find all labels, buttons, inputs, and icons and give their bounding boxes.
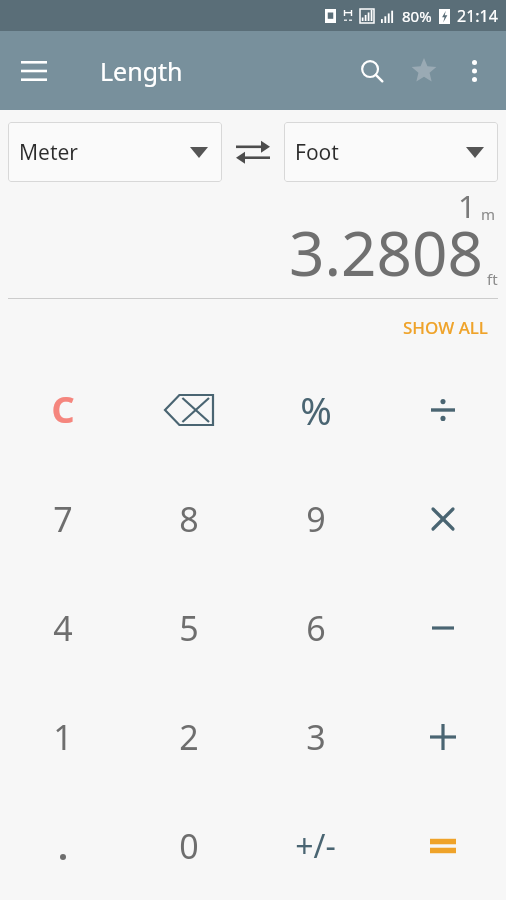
staticText: 8 (179, 496, 199, 542)
button[interactable]: More options (450, 47, 498, 95)
staticText: 0 (179, 823, 199, 869)
staticText: 2 (179, 714, 199, 760)
staticText: Length (100, 54, 183, 88)
button[interactable]: 9 (252, 464, 379, 573)
button[interactable]: 3 (252, 682, 379, 791)
button[interactable]: 6 (252, 573, 379, 682)
button[interactable]: 5 (126, 573, 252, 682)
button[interactable]: SHOW ALL (393, 308, 498, 347)
staticText: 9 (306, 496, 326, 542)
button[interactable]: C (0, 355, 126, 464)
staticText: Foot (295, 138, 339, 167)
button[interactable]: +/- (252, 791, 379, 900)
button[interactable]: Decimal point (0, 791, 126, 900)
button[interactable]: Multiply (379, 464, 506, 573)
staticText: 7 (53, 496, 73, 542)
staticText: 3 (306, 714, 326, 760)
button[interactable]: Minus (379, 573, 506, 682)
staticText: C (51, 385, 75, 434)
staticText: 5 (179, 605, 199, 651)
staticText: 1 (458, 185, 476, 227)
button[interactable]: Backspace (126, 355, 252, 464)
button[interactable]: Equals (379, 791, 506, 900)
staticText: m (481, 204, 496, 224)
button[interactable]: 7 (0, 464, 126, 573)
button[interactable]: 0 (126, 791, 252, 900)
button[interactable]: Open navigation drawer (10, 47, 58, 95)
staticText: 4 (53, 605, 73, 651)
staticText: 1 (53, 714, 73, 760)
button[interactable]: Favorite (398, 45, 450, 97)
staticText: ft (487, 269, 498, 289)
button[interactable]: Swap units (222, 122, 284, 182)
button[interactable]: Foot (284, 122, 498, 182)
staticText: 21:14 (457, 5, 498, 27)
staticText: Meter (19, 138, 78, 167)
staticText: +/- (295, 824, 336, 868)
button[interactable]: Meter (8, 122, 222, 182)
staticText: 6 (306, 605, 326, 651)
staticText: SHOW ALL (403, 316, 488, 339)
button[interactable]: 1 (0, 682, 126, 791)
button[interactable]: 8 (126, 464, 252, 573)
button[interactable]: Search (346, 45, 398, 97)
button[interactable]: Plus (379, 682, 506, 791)
staticText: 80% (402, 6, 432, 26)
button[interactable]: 4 (0, 573, 126, 682)
button[interactable]: % (252, 355, 379, 464)
staticText: 3.2808 (289, 210, 483, 294)
button[interactable]: 2 (126, 682, 252, 791)
button[interactable]: Divide (379, 355, 506, 464)
staticText: % (300, 384, 332, 436)
